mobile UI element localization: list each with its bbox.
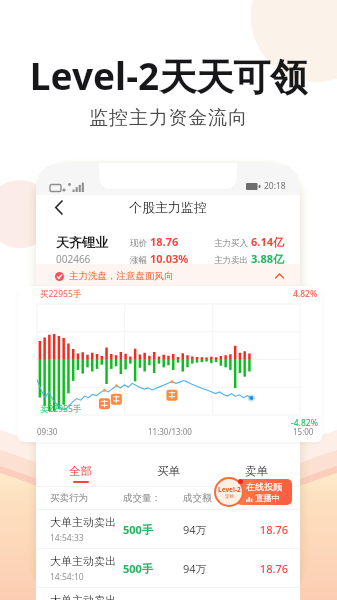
staticText: 大单主动卖出 [50,515,116,529]
button[interactable]: Back [55,197,75,217]
staticText: 14:54:10 [50,571,84,583]
staticText: 94万 [183,522,243,537]
button[interactable]: 在线投顾 [214,477,292,507]
button[interactable]: 大单主动卖出 [36,548,300,587]
staticText: 主力卖出 [214,255,248,266]
staticText: 6.14亿 [251,234,284,249]
staticText: 买22955手 [40,288,82,300]
staticText: 涨幅 [130,255,147,266]
staticText: Level-2天天可领 [0,50,337,101]
staticText: 4.82% [293,288,318,300]
staticText: 20:18 [264,180,286,192]
staticText: 15:00 [293,426,314,437]
staticText: -4.82% [291,417,318,429]
staticText: 14:54:33 [50,532,84,544]
staticText: 价格 [243,492,288,504]
button[interactable]: 主力洗盘，注意盘面风向 [55,264,284,288]
staticText: 002466 [56,252,91,266]
staticText: 大单主动卖出 [50,593,116,600]
staticText: 18.76 [243,561,288,576]
staticText: 直播中 [255,493,281,504]
button[interactable]: 大单主动卖出 [36,587,300,600]
button[interactable]: 卖单 [212,460,300,486]
staticText: 卖22955手 [40,403,82,415]
staticText: 个股主力监控 [129,199,207,215]
staticText: 买卖行为 [50,492,123,504]
staticText: 10.03% [150,251,189,266]
staticText: 18.76 [243,522,288,537]
staticText: 监控主力资金流向 [0,106,337,130]
staticText: 成交额 [183,492,243,504]
staticText: 导航 [225,494,234,500]
staticText: 现价 [130,238,147,249]
staticText: 主力洗盘，注意盘面风向 [69,270,174,282]
button[interactable]: 全部 [36,460,124,486]
staticText: 11:30/13:00 [148,426,192,437]
button[interactable]: 大单主动卖出 [36,509,300,548]
staticText: 18.76 [150,234,179,249]
staticText: 天齐锂业 [56,234,108,250]
staticText: 94万 [183,561,243,576]
button[interactable]: 买单 [124,460,212,486]
staticText: 主力买入 [214,238,248,249]
staticText: 买单 [157,464,180,478]
staticText: Level-2 [218,485,241,494]
staticText: 3.88亿 [251,251,284,266]
staticText: 09:30 [37,426,58,437]
staticText: 全部 [69,464,92,478]
staticText: 500手 [123,522,183,537]
staticText: 卖单 [245,464,268,478]
staticText: 大单主动卖出 [50,554,116,568]
staticText: 成交量： [123,492,183,504]
staticText: 500手 [123,561,183,576]
staticText: 在线投顾 [246,481,282,492]
